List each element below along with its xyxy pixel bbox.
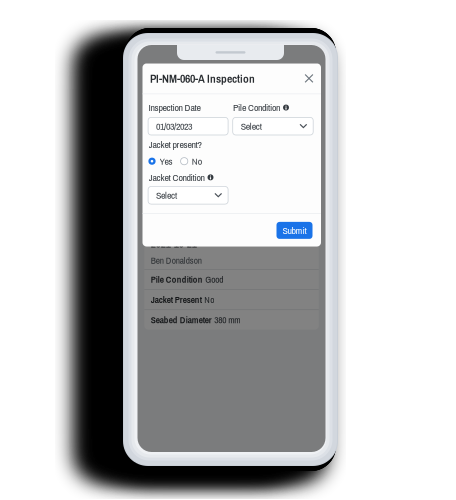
staticText: Select: [241, 120, 262, 133]
staticText: PI-NM-060-A Inspection: [150, 71, 255, 86]
staticText: 01/03/2023: [156, 120, 192, 133]
staticText: Good: [205, 273, 223, 286]
staticText: Ben Donaldson: [151, 254, 202, 267]
staticText: Submit: [282, 224, 306, 237]
staticText: Seabed Diameter: [151, 314, 212, 326]
staticText: Pile Condition: [151, 273, 203, 286]
staticText: Jacket Condition: [148, 171, 204, 184]
staticText: No: [204, 293, 214, 306]
staticText: Jacket Present: [151, 293, 202, 306]
staticText: Select: [156, 189, 177, 202]
button[interactable]: 01/03/2023: [148, 117, 228, 135]
button[interactable]: Select: [233, 117, 313, 135]
staticText: 2021-10-21: [151, 236, 197, 251]
button[interactable]: Select: [148, 186, 228, 204]
staticText: No: [192, 155, 202, 168]
button[interactable]: Yes: [148, 155, 173, 168]
button[interactable]: Submit: [276, 222, 312, 239]
staticText: Inspection Date: [148, 101, 200, 114]
staticText: Yes: [160, 155, 173, 168]
staticText: Pile Condition: [233, 101, 280, 114]
button[interactable]: PI-NM-060-A Inspection: [142, 63, 321, 93]
staticText: 380 mm: [214, 314, 240, 326]
staticText: Jacket present?: [148, 138, 201, 151]
button[interactable]: No: [181, 155, 202, 168]
